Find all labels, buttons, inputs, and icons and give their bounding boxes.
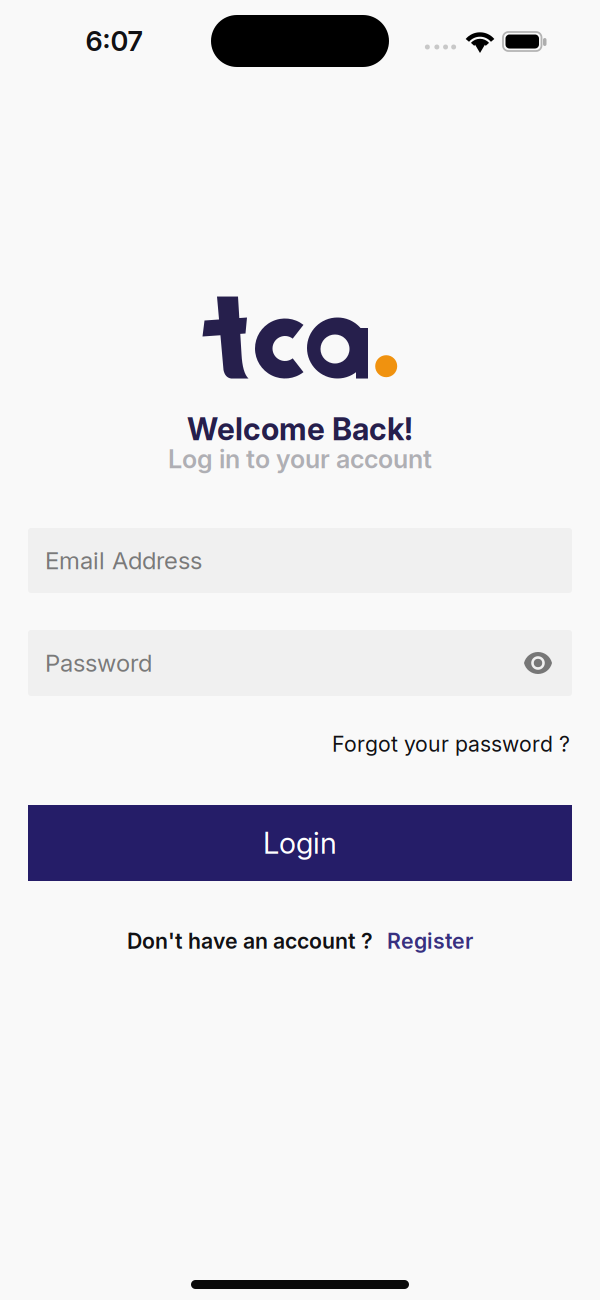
button[interactable]: Password: [28, 630, 572, 696]
staticText: 6:07: [85, 24, 142, 58]
staticText: Password: [45, 648, 152, 677]
button[interactable]: Email Address: [28, 528, 572, 593]
staticText: Welcome Back!: [187, 410, 413, 447]
button[interactable]: Register: [387, 928, 473, 954]
staticText: Register: [387, 928, 473, 954]
staticText: Log in to your account: [168, 444, 432, 474]
staticText: Login: [263, 825, 337, 861]
staticText: Email Address: [45, 546, 202, 575]
staticText: Forgot your password ?: [332, 731, 570, 757]
button[interactable]: Login: [28, 805, 572, 881]
button[interactable]: Forgot your password ?: [332, 731, 570, 757]
staticText: Don't have an account ?: [127, 928, 373, 954]
